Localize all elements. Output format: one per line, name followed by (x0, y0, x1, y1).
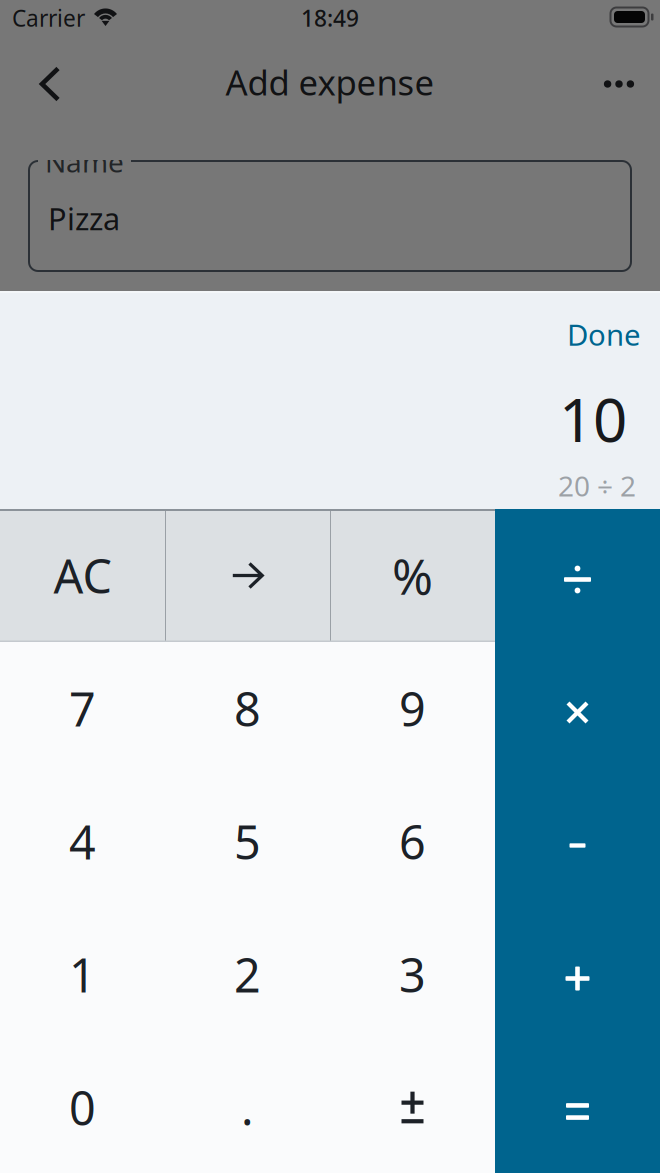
staticText: % (392, 543, 433, 608)
staticText: . (241, 1076, 254, 1138)
button[interactable]: Divide (495, 509, 660, 642)
staticText: 4 (69, 810, 96, 872)
button[interactable]: 9 (330, 642, 495, 775)
button[interactable]: 8 (165, 642, 330, 775)
staticText: 0 (69, 1076, 96, 1138)
staticText: Carrier (12, 3, 85, 33)
staticText: 9 (399, 677, 426, 739)
button[interactable]: 2 (165, 908, 330, 1041)
button[interactable]: 1 (0, 908, 165, 1041)
button[interactable]: Add (495, 908, 660, 1041)
staticText: 20 ÷ 2 (558, 467, 636, 504)
button[interactable]: 5 (165, 775, 330, 908)
button[interactable]: Done (556, 308, 652, 361)
button[interactable]: Subtract (495, 775, 660, 908)
button[interactable]: 7 (0, 642, 165, 775)
button[interactable]: More options (585, 52, 653, 116)
staticText: 7 (69, 677, 96, 739)
button[interactable]: Plus minus (330, 1041, 495, 1173)
button[interactable]: Backspace (165, 509, 330, 642)
staticText: 18:49 (301, 3, 359, 33)
button[interactable]: Back (12, 52, 88, 116)
staticText: 1 (69, 943, 96, 1005)
button[interactable]: 4 (0, 775, 165, 908)
staticText: Pizza (48, 198, 120, 239)
button[interactable]: 6 (330, 775, 495, 908)
staticText: 2 (234, 943, 261, 1005)
staticText: Name (45, 143, 124, 180)
button[interactable]: Multiply (495, 642, 660, 775)
staticText: 10 (559, 379, 627, 459)
button[interactable]: . (165, 1041, 330, 1173)
staticText: 5 (234, 810, 261, 872)
staticText: Add expense (225, 59, 434, 105)
button[interactable]: Equals (495, 1041, 660, 1173)
button[interactable]: AC (0, 509, 165, 642)
button[interactable]: 3 (330, 908, 495, 1041)
staticText: 8 (234, 677, 261, 739)
button[interactable]: 0 (0, 1041, 165, 1173)
staticText: AC (53, 544, 111, 606)
staticText: 3 (399, 943, 426, 1005)
staticText: Done (567, 315, 641, 354)
staticText: 6 (399, 810, 426, 872)
button[interactable]: % (330, 509, 495, 642)
button[interactable]: Name (0, 0, 660, 292)
